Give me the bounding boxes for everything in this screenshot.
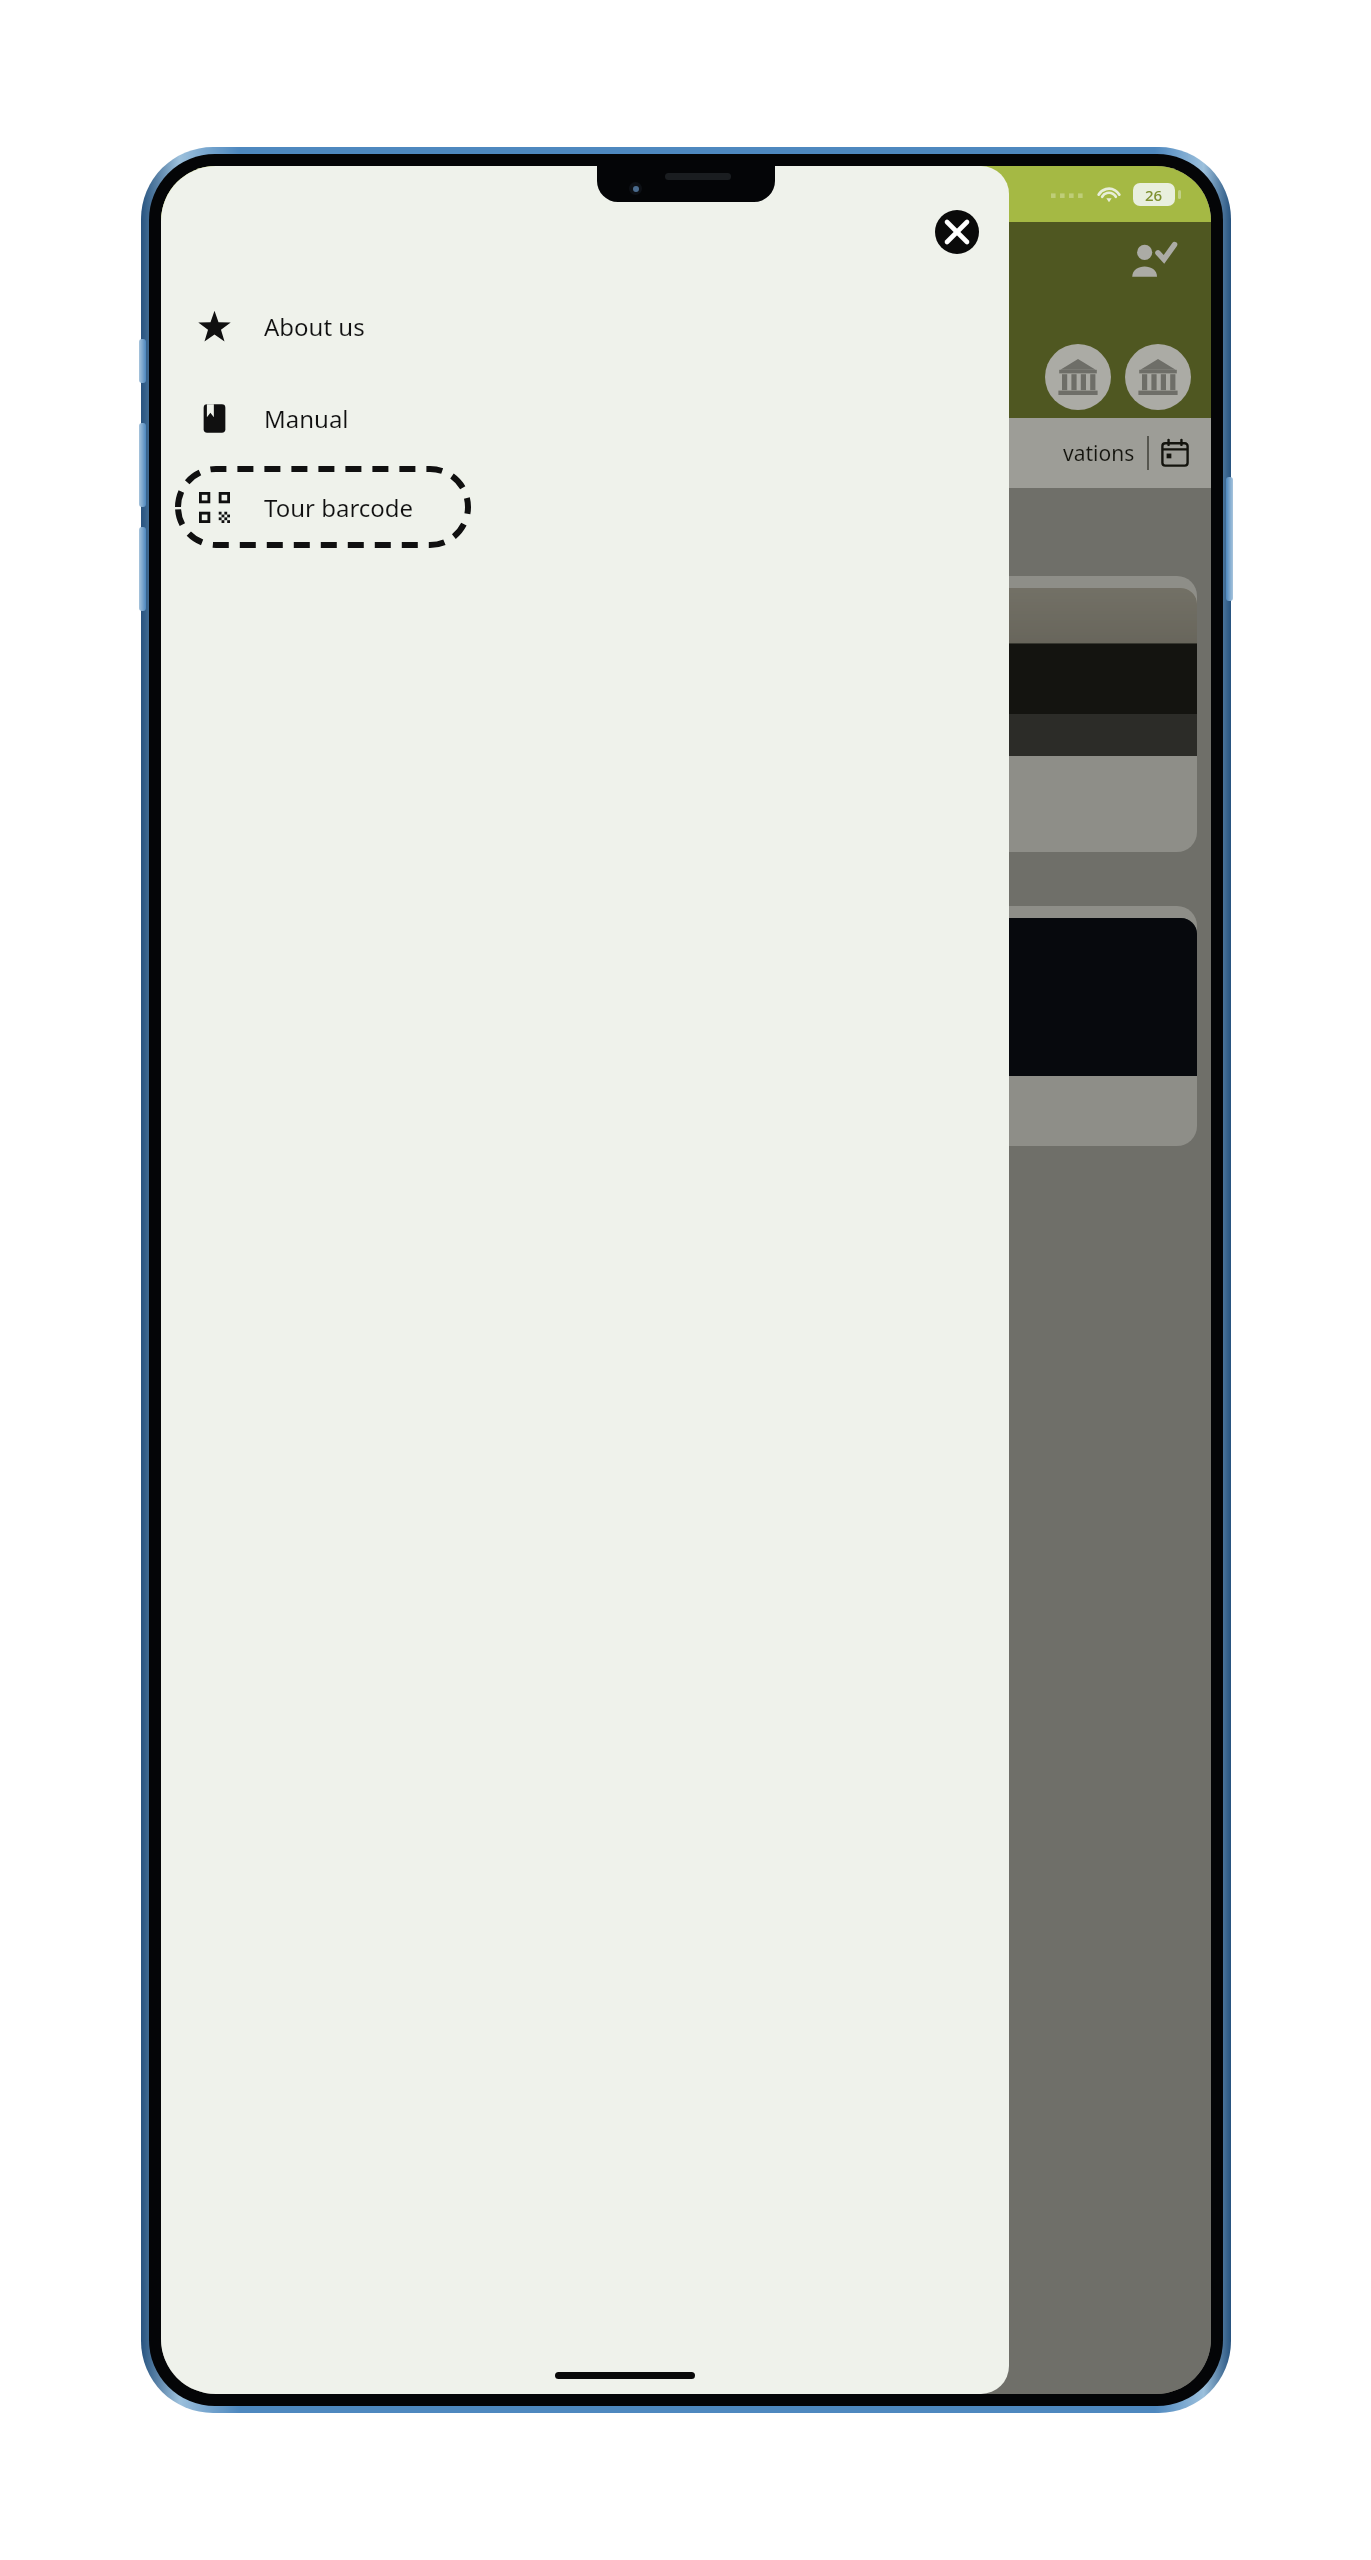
staticText: Manual	[264, 402, 349, 435]
button[interactable]: Category	[1045, 344, 1111, 410]
button[interactable]: Account	[1129, 240, 1175, 286]
button[interactable]	[171, 576, 1197, 852]
button[interactable]: Manual	[161, 390, 1009, 446]
button[interactable]	[171, 906, 1197, 1146]
staticText: 26	[1145, 185, 1163, 205]
staticText: vations	[1063, 439, 1135, 468]
staticText: About us	[264, 310, 365, 343]
button[interactable]: Tour barcode	[175, 466, 471, 548]
button[interactable]: About us	[161, 298, 1009, 354]
button[interactable]: Close menu	[935, 210, 979, 254]
staticText: Tour barcode	[264, 491, 414, 524]
button[interactable]: Category	[1125, 344, 1191, 410]
